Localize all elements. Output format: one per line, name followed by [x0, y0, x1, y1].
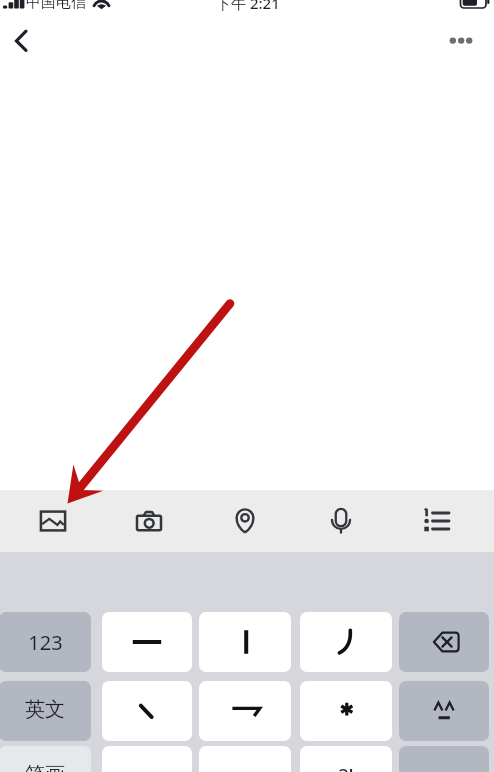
staticText: 英文: [25, 697, 65, 722]
staticText: 笔画: [25, 762, 65, 772]
button[interactable]: More options: [442, 20, 494, 66]
button[interactable]: ?!: [300, 746, 392, 772]
button[interactable]: 英文: [0, 681, 91, 741]
button[interactable]: Voice: [293, 490, 389, 552]
button[interactable]: [102, 681, 192, 741]
staticText: 下午 2:21: [216, 0, 280, 13]
staticText: 123: [28, 629, 63, 656]
staticText: 中国电信: [26, 0, 86, 12]
button[interactable]: [399, 681, 489, 741]
button[interactable]: [300, 681, 392, 741]
button[interactable]: [199, 681, 291, 741]
button[interactable]: [300, 612, 392, 672]
button[interactable]: 笔画: [0, 746, 91, 772]
button[interactable]: [102, 612, 192, 672]
button[interactable]: [102, 746, 192, 772]
button[interactable]: [399, 746, 489, 772]
button[interactable]: [199, 746, 291, 772]
button[interactable]: [399, 612, 489, 672]
button[interactable]: 123: [0, 612, 91, 672]
button[interactable]: Photo: [5, 490, 101, 552]
staticText: ?!: [339, 763, 354, 772]
button[interactable]: Back: [0, 20, 44, 66]
button[interactable]: [199, 612, 291, 672]
button[interactable]: Camera: [101, 490, 197, 552]
button[interactable]: Location: [197, 490, 293, 552]
button[interactable]: List: [389, 490, 485, 552]
